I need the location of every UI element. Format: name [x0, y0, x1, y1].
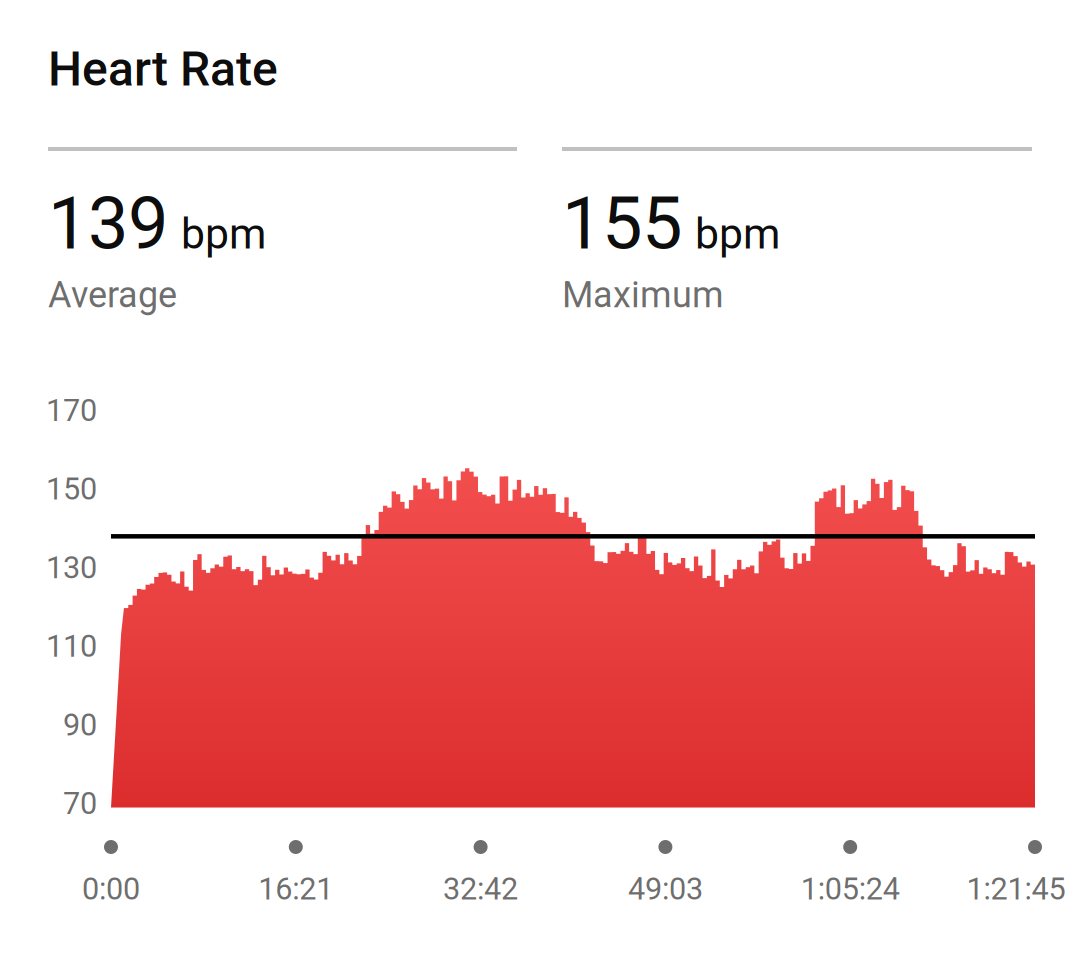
staticText: Maximum — [562, 274, 724, 316]
button[interactable]: 139 — [48, 190, 518, 320]
staticText: 170 — [46, 392, 97, 428]
staticText: 155 — [562, 182, 682, 266]
staticText: Average — [48, 274, 177, 316]
staticText: 0:00 — [82, 871, 140, 907]
staticText: 70 — [63, 785, 97, 821]
staticText: bpm — [181, 209, 266, 259]
staticText: 150 — [46, 471, 97, 507]
staticText: 1:05:24 — [801, 871, 900, 907]
staticText: 110 — [46, 628, 97, 664]
staticText: 1:21:45 — [966, 871, 1065, 907]
staticText: 90 — [63, 707, 97, 743]
staticText: 49:03 — [628, 871, 703, 907]
staticText: bpm — [695, 209, 780, 259]
staticText: 16:21 — [258, 871, 333, 907]
staticText: 32:42 — [443, 871, 518, 907]
staticText: 139 — [48, 182, 168, 266]
button[interactable]: 155 — [562, 190, 1032, 320]
staticText: Heart Rate — [48, 41, 278, 97]
staticText: 130 — [46, 550, 97, 586]
